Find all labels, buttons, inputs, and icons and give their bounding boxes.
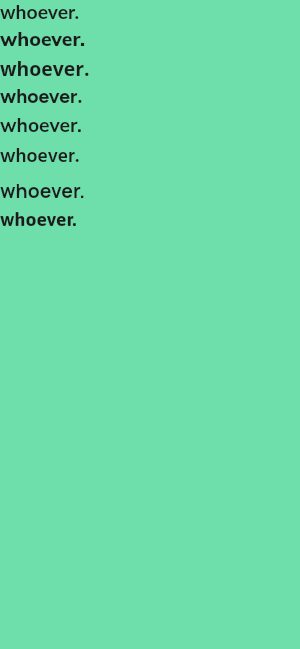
staticText: whoever. xyxy=(0,112,82,138)
staticText: whoever. xyxy=(0,27,86,51)
staticText: whoever. xyxy=(0,85,83,108)
staticText: whoever. xyxy=(0,55,90,81)
staticText: whoever. xyxy=(0,177,86,204)
staticText: whoever. xyxy=(0,208,77,230)
staticText: whoever. xyxy=(0,0,80,23)
staticText: whoever. xyxy=(0,142,80,173)
